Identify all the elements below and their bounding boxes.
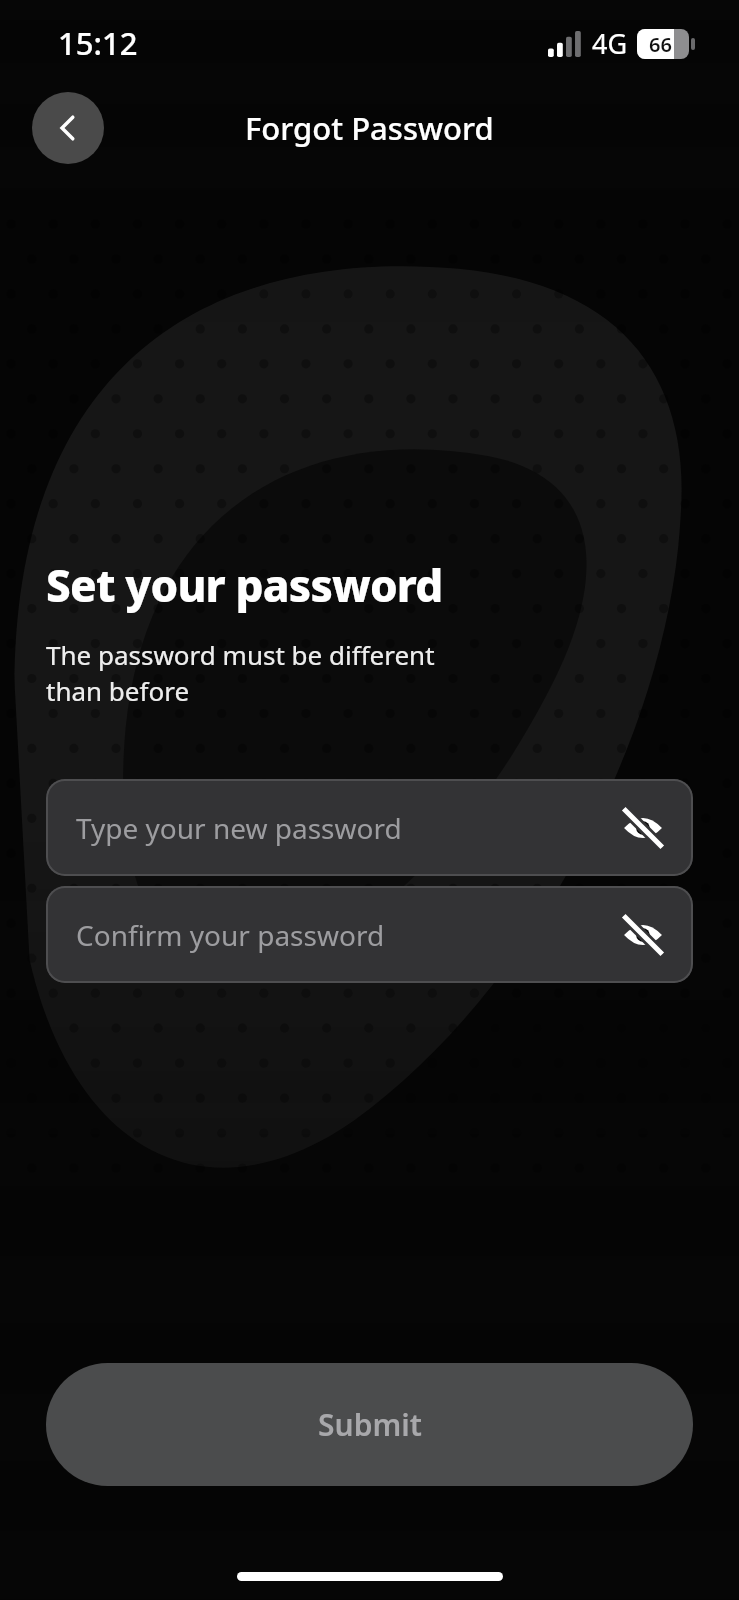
staticText: The password must be different than befo… — [46, 637, 435, 709]
staticText: 4G — [592, 25, 628, 62]
staticText: Type your new password — [76, 809, 402, 847]
staticText: Submit — [318, 1404, 422, 1445]
button[interactable]: Back — [32, 92, 104, 164]
staticText: Confirm your password — [76, 916, 385, 954]
button[interactable]: Confirm your password — [46, 886, 693, 983]
button[interactable]: Show password — [615, 907, 671, 963]
button[interactable]: Submit — [46, 1363, 693, 1486]
staticText: Set your password — [46, 555, 443, 615]
staticText: 15:12 — [58, 22, 138, 64]
button[interactable]: Type your new password — [46, 779, 693, 876]
button[interactable]: Show password — [615, 800, 671, 856]
staticText: 66 — [649, 31, 672, 58]
staticText: Forgot Password — [245, 107, 494, 149]
